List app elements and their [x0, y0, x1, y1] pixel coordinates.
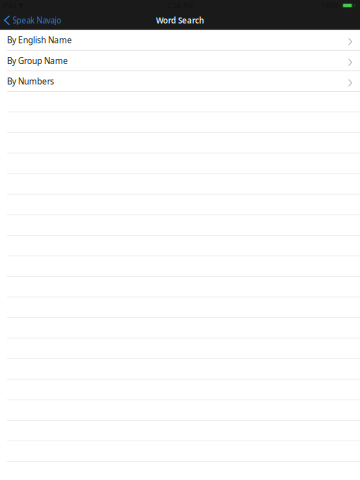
- button[interactable]: Speak Navajo: [0, 11, 68, 30]
- staticText: By English Name: [7, 34, 72, 46]
- button[interactable]: By Group Name: [0, 51, 360, 71]
- button[interactable]: By English Name: [0, 30, 360, 51]
- staticText: Speak Navajo: [13, 15, 62, 26]
- staticText: Word Search: [156, 15, 204, 26]
- button[interactable]: By Numbers: [0, 71, 360, 92]
- staticText: By Group Name: [7, 55, 68, 66]
- staticText: By Numbers: [7, 75, 54, 87]
